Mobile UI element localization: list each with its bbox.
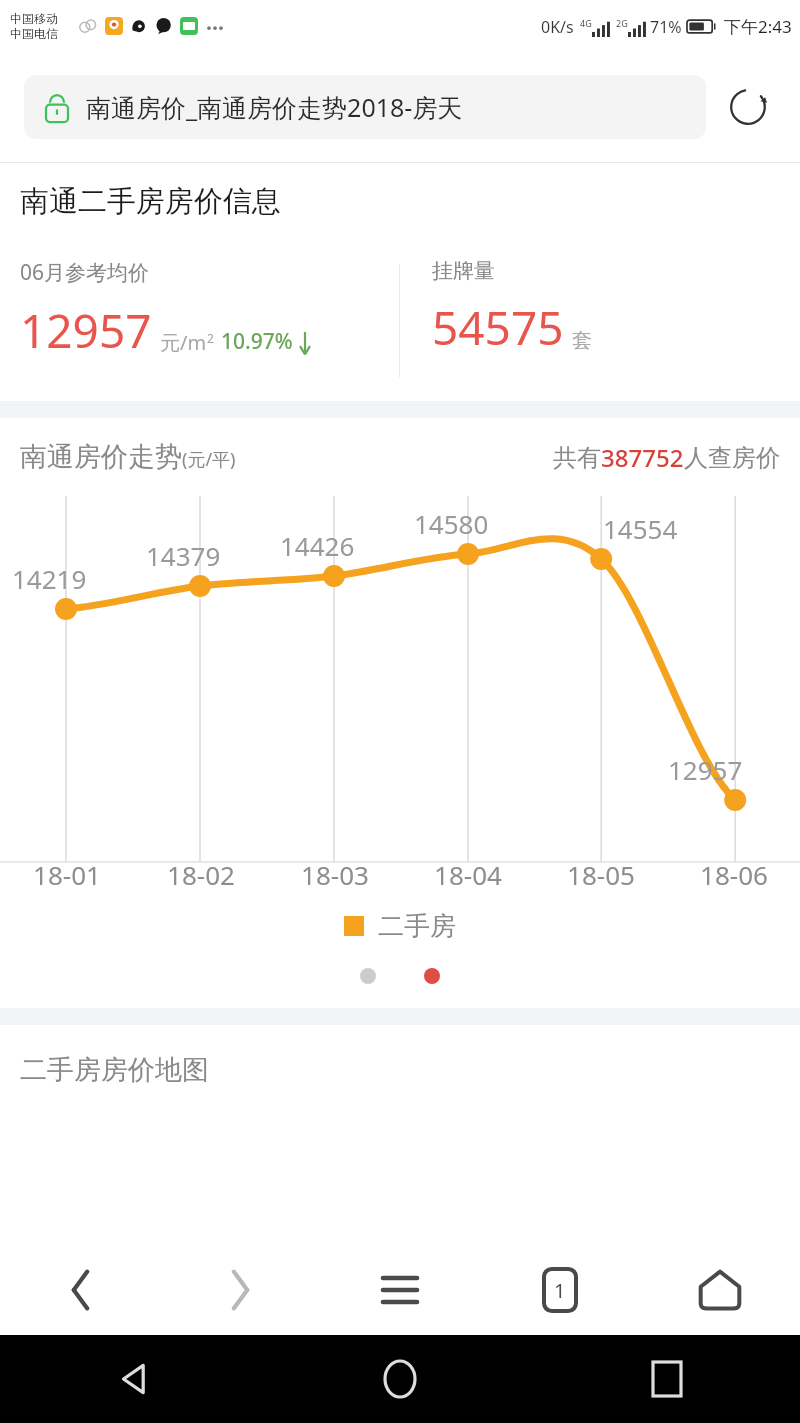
staticText: 14219 [12,561,87,596]
button[interactable]: Home [266,1335,533,1423]
button[interactable]: 二手房房价地图 [0,1025,800,1115]
staticText: 南通二手房房价信息 [20,183,281,220]
staticText: 12957 [20,299,152,362]
staticText: 南通房价_南通房价走势2018-房天 [86,90,463,124]
staticText: 18-04 [434,857,502,892]
button[interactable]: Back [0,1335,266,1423]
staticText: 2 [207,330,214,346]
staticText: 套 [572,328,592,353]
staticText: 18-01 [33,857,101,892]
button[interactable]: Page 1 [360,968,376,984]
staticText: 54575 [432,296,564,359]
staticText: 06月参考均价 [20,258,150,287]
button[interactable]: Menu [320,1245,480,1335]
staticText: 71% [650,16,682,38]
staticText: 中国电信 [10,26,58,41]
button[interactable]: Page 2 [424,968,440,984]
staticText: 南通房价走势 [20,440,182,474]
staticText: 元/m [160,329,207,356]
staticText: 10.97% [221,327,293,356]
staticText: 下午2:43 [724,15,792,38]
staticText: 18-05 [567,857,635,892]
button[interactable]: Forward [160,1245,320,1335]
staticText: 二手房 [378,910,456,943]
staticText: 12957 [668,752,743,787]
staticText: 18-02 [167,857,235,892]
button[interactable]: Recents [533,1335,800,1423]
button[interactable]: Home [640,1245,800,1335]
staticText: 人查房价 [684,443,780,473]
staticText: (元/平) [182,447,236,472]
staticText: 4G [580,17,592,29]
staticText: 14426 [280,528,355,563]
button[interactable]: Refresh [720,79,776,135]
staticText: 14554 [603,511,678,546]
button[interactable]: Tabs [480,1245,640,1335]
staticText: 共有 [553,443,601,473]
staticText: 387752 [601,441,684,474]
staticText: 挂牌量 [432,258,495,284]
staticText: 1 [554,1277,566,1304]
staticText: 14379 [146,538,221,573]
staticText: 中国移动 [10,11,58,26]
staticText: 二手房房价地图 [20,1053,209,1087]
staticText: 0K/s [541,16,574,38]
button[interactable]: Back [0,1245,160,1335]
button[interactable]: 南通房价_南通房价走势2018-房天 [24,75,706,139]
staticText: 18-03 [301,857,369,892]
staticText: 18-06 [700,857,768,892]
staticText: 14580 [414,506,489,541]
staticText: 2G [616,17,628,29]
